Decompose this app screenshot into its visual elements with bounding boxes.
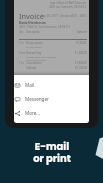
staticText: Messenger: [25, 96, 49, 102]
staticText: Sep 28, 2017 | Invoice #001 - 0061: [41, 14, 87, 18]
staticText: 1 hr: [19, 61, 24, 65]
staticText: Researching and preparing issues and sub…: [26, 55, 57, 61]
button[interactable]: Mail: [14, 78, 89, 92]
staticText: 1 hr: [19, 41, 24, 45]
staticText: $3,100.00: [75, 66, 87, 70]
staticText: Amount: [77, 30, 87, 34]
staticText: E-mail or print: [33, 139, 71, 165]
staticText: $1,00.00: [76, 41, 87, 45]
staticText: on-site service: [26, 45, 43, 48]
staticText: $1,300.00: [75, 51, 87, 55]
staticText: 3401 av. Cameron, CA 94112: [49, 5, 87, 9]
staticText: Description: [26, 30, 40, 34]
staticText: 2 hrs: [19, 51, 26, 55]
staticText: More...: [25, 110, 41, 116]
staticText: Researching: [26, 51, 41, 55]
button[interactable]: More...: [14, 106, 89, 120]
staticText: Daniel Henderson: [19, 21, 46, 25]
staticText: $1,800.00: [75, 61, 87, 65]
staticText: Mail: [25, 82, 35, 88]
button[interactable]: Messenger: [14, 92, 89, 106]
staticText: Filing request: [26, 41, 43, 45]
staticText: Subtotal: [26, 66, 37, 70]
staticText: Qty: [19, 30, 24, 34]
staticText: Consultation: [26, 61, 42, 65]
staticText: Invoice: [19, 11, 44, 21]
staticText: 3401-135th St, San Francisco, CA 94112: [19, 25, 71, 29]
staticText: Law offices of Neil Clearson: [50, 1, 87, 5]
